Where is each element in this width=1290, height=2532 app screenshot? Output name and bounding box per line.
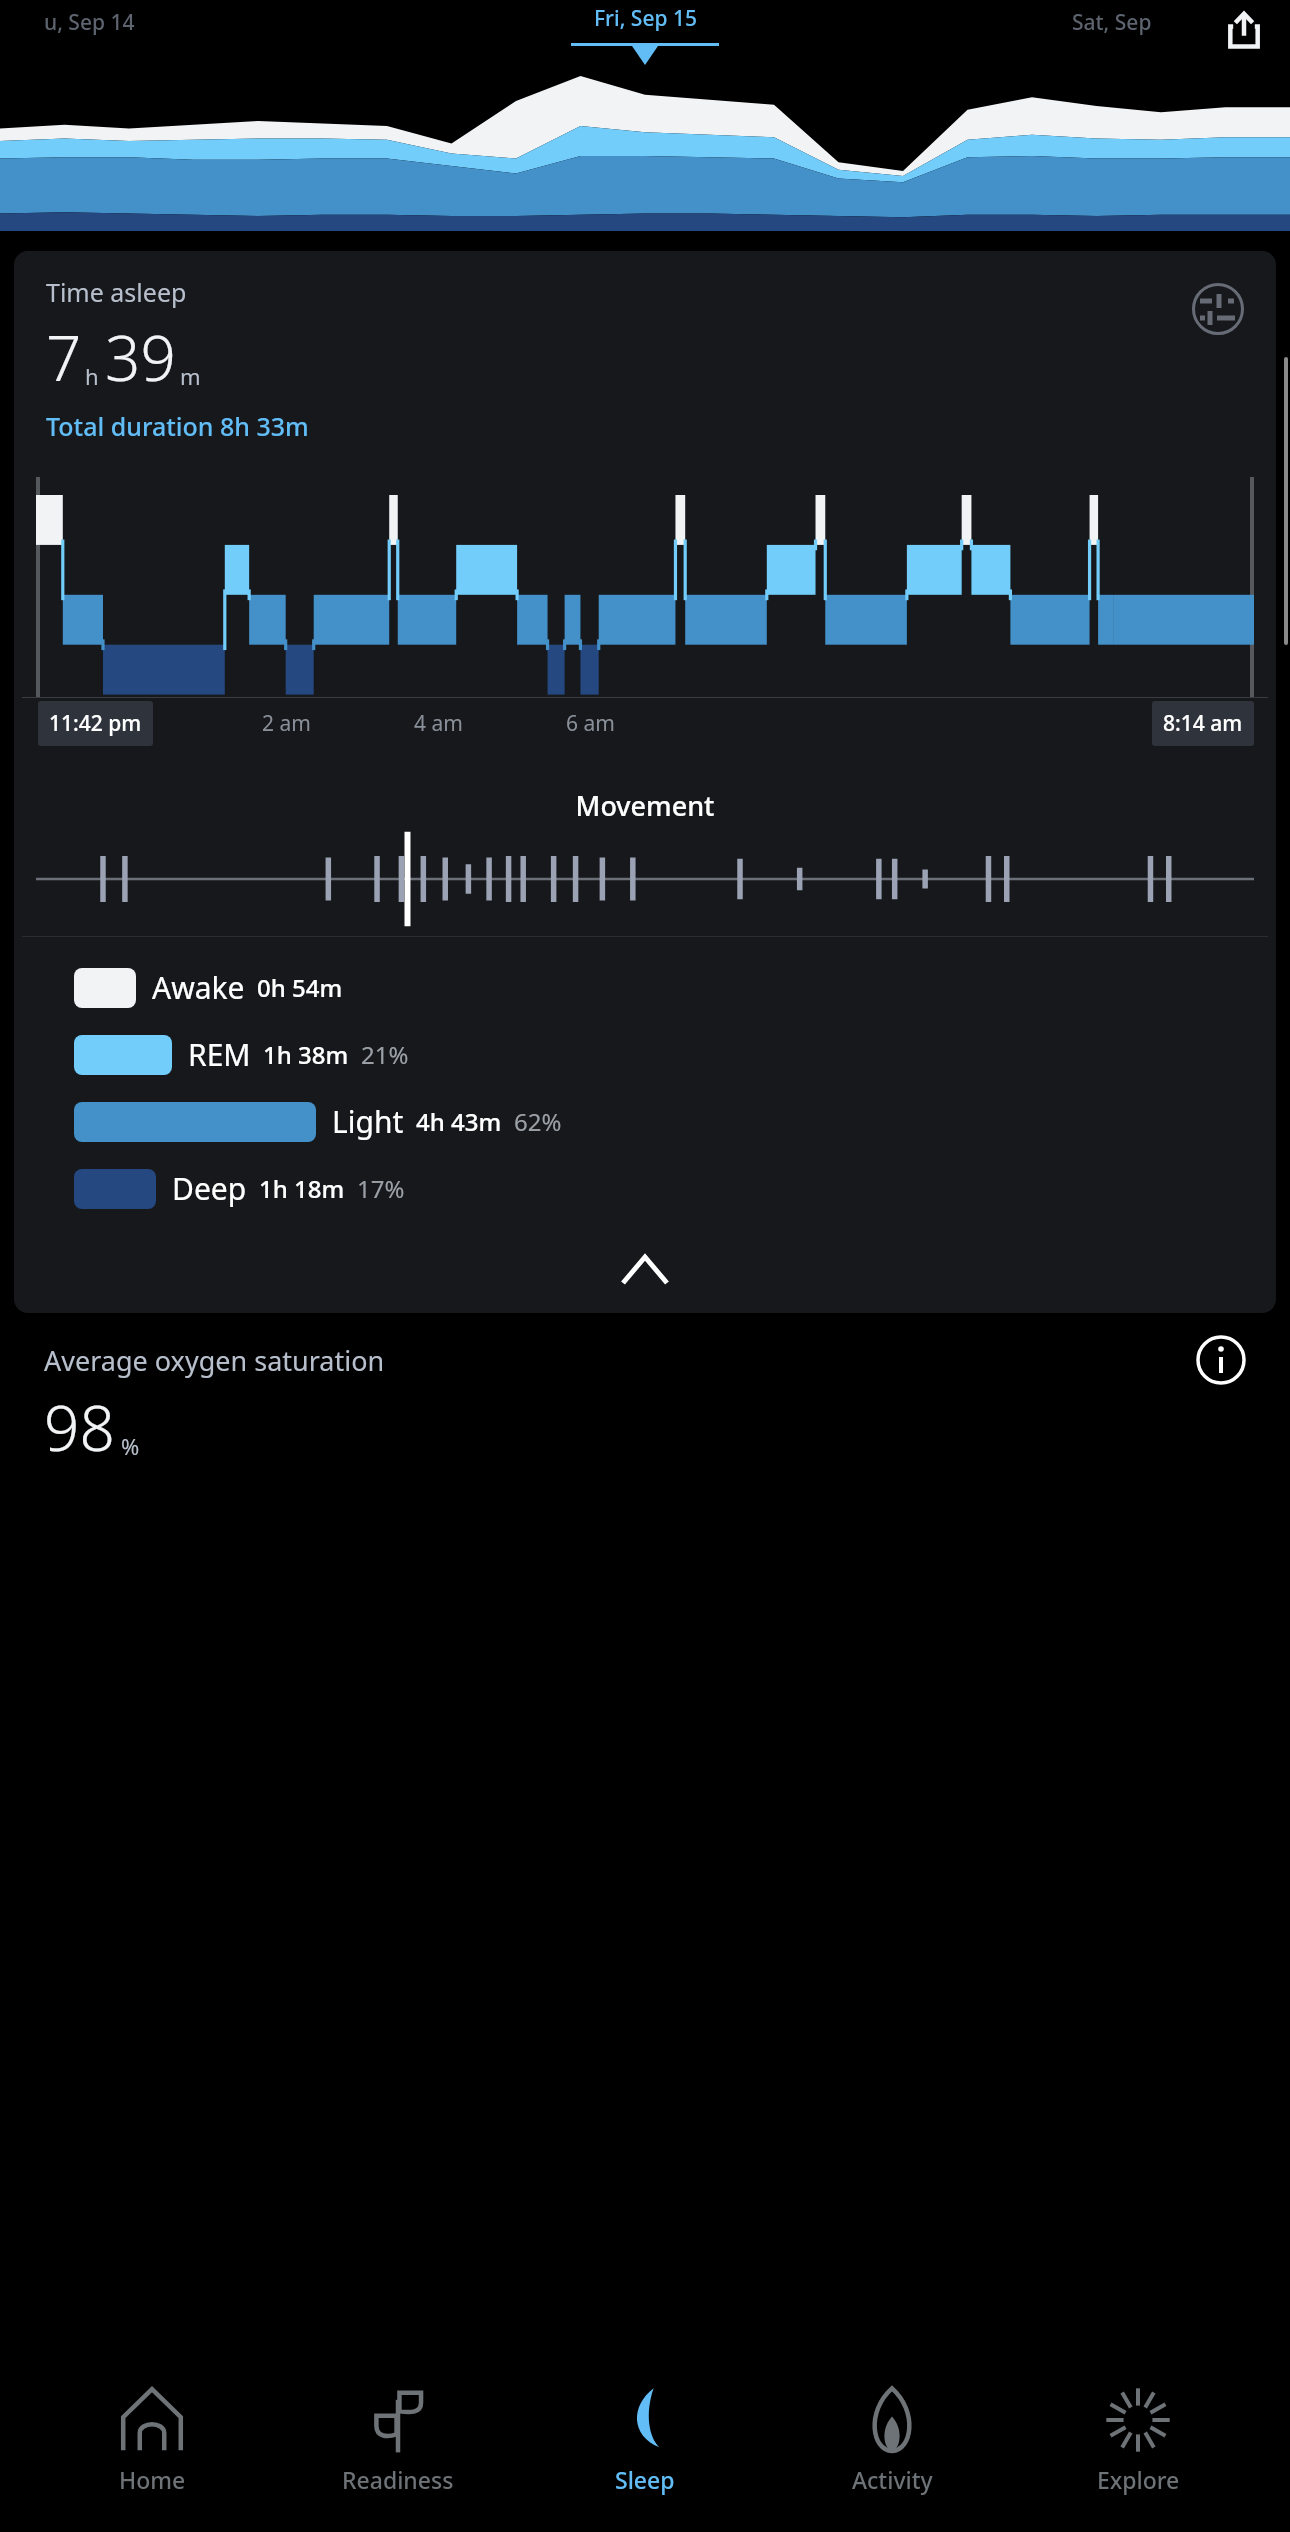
button[interactable]: Info xyxy=(1196,1335,1246,1385)
button[interactable]: Time asleep xyxy=(14,251,1276,1313)
staticText: Deep xyxy=(172,1168,247,1209)
button[interactable]: Fri, Sep 15 xyxy=(571,0,719,59)
button[interactable]: Activity xyxy=(797,2370,987,2495)
staticText: Average oxygen saturation xyxy=(44,1342,1196,1379)
button[interactable]: Share xyxy=(1216,2,1272,58)
staticText: 98 xyxy=(44,1385,115,1469)
staticText: 21% xyxy=(361,1038,409,1071)
staticText: REM xyxy=(188,1034,251,1075)
button[interactable]: Collapse xyxy=(14,1243,1276,1297)
staticText: Time asleep xyxy=(46,275,187,309)
staticText: 6 am xyxy=(566,709,615,738)
staticText: Home xyxy=(119,2464,186,2495)
button[interactable]: Explore xyxy=(1043,2370,1233,2495)
staticText: 0h 54m xyxy=(257,971,343,1004)
staticText: Readiness xyxy=(342,2464,454,2495)
staticText: 1h 38m xyxy=(263,1038,349,1071)
staticText: 7 xyxy=(46,315,82,399)
button[interactable]: Light xyxy=(74,1101,1276,1142)
button[interactable]: Awake xyxy=(74,967,1276,1008)
staticText: Light xyxy=(332,1101,404,1142)
staticText: Total duration 8h 33m xyxy=(46,409,309,443)
staticText: Explore xyxy=(1097,2464,1180,2495)
button[interactable]: u, Sep 14 xyxy=(36,4,143,41)
staticText: h xyxy=(85,361,99,391)
staticText: Activity xyxy=(852,2464,933,2495)
button[interactable]: Deep xyxy=(74,1168,1276,1209)
staticText: % xyxy=(121,1431,140,1461)
staticText: Sleep xyxy=(615,2464,675,2495)
staticText: Awake xyxy=(152,967,245,1008)
button[interactable]: Sleep xyxy=(550,2370,740,2495)
staticText: 8:14 am xyxy=(1163,709,1243,738)
staticText: 11:42 pm xyxy=(49,709,142,738)
staticText: m xyxy=(180,361,201,391)
staticText: 39 xyxy=(105,315,176,399)
button[interactable]: Adjust xyxy=(1192,283,1244,335)
staticText: 2 am xyxy=(262,709,311,738)
button[interactable]: Readiness xyxy=(303,2370,493,2495)
staticText: 62% xyxy=(514,1105,562,1138)
staticText: 17% xyxy=(357,1172,405,1205)
staticText: 4h 43m xyxy=(416,1105,502,1138)
staticText: Movement xyxy=(14,787,1276,824)
button[interactable]: Sat, Sep xyxy=(1064,4,1160,41)
button[interactable]: REM xyxy=(74,1034,1276,1075)
staticText: Fri, Sep 15 xyxy=(594,4,697,33)
staticText: 4 am xyxy=(414,709,463,738)
button[interactable]: Home xyxy=(57,2370,247,2495)
staticText: 1h 18m xyxy=(259,1172,345,1205)
